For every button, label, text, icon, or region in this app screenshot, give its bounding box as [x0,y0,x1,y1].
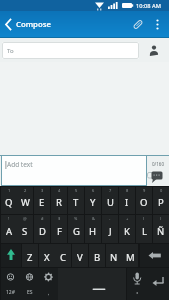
staticText: X [44,251,50,264]
staticText: 12# [6,289,15,296]
button[interactable]: D [34,215,50,243]
button[interactable] [127,268,148,300]
button[interactable]: S [17,215,33,243]
button[interactable]: I [119,187,135,214]
staticText: 5 [75,188,78,193]
staticText: & [92,216,95,221]
staticText: , [48,290,50,297]
button[interactable]: , [39,268,58,300]
button[interactable]: P [153,187,169,214]
button[interactable]: U [102,187,118,214]
staticText: ) [160,216,162,221]
button[interactable]: Add text [1,155,147,186]
button[interactable]: A [1,215,17,243]
staticText: E [39,196,45,209]
staticText: K [124,225,130,238]
staticText: @ [23,216,27,221]
button[interactable]: To [2,42,139,59]
button[interactable]: E [34,187,50,214]
staticText: 0 [160,188,163,193]
button[interactable]: T [68,187,84,214]
button[interactable]: C [55,244,71,267]
button[interactable] [148,268,169,300]
staticText: Compose [16,19,51,30]
staticText: Add text [7,160,33,169]
staticText: I [125,196,129,209]
staticText: 6 [92,188,95,193]
button[interactable]: V [72,244,88,267]
staticText: M [126,251,135,264]
button[interactable]: X [39,244,55,267]
staticText: # [41,216,44,221]
button[interactable]: Y [85,187,101,214]
button[interactable] [58,268,126,300]
button[interactable]: N [106,244,122,267]
staticText: P [158,196,164,209]
button[interactable]: L [136,215,152,243]
staticText: F [57,225,62,238]
staticText: 4 [58,188,61,193]
button[interactable]: Ñ [153,215,169,243]
button[interactable] [146,170,166,186]
staticText: 7 [109,188,112,193]
button[interactable]: O [136,187,152,214]
staticText: + [126,216,129,221]
button[interactable]: B [89,244,105,267]
button[interactable]: K [119,215,135,243]
staticText: Z [27,251,33,264]
button[interactable]: H [85,215,101,243]
staticText: $ [58,216,61,221]
staticText: To [7,47,14,55]
staticText: U [107,196,114,209]
button[interactable] [145,41,163,59]
staticText: A [6,225,13,238]
staticText: V [77,251,83,264]
staticText: J [109,225,112,238]
button[interactable] [1,244,21,267]
staticText: 0/160 [152,161,164,167]
button[interactable]: F [51,215,67,243]
staticText: Ñ [157,225,165,238]
button[interactable] [150,11,166,38]
staticText: O [140,196,148,209]
staticText: R [56,196,62,209]
staticText: H [89,225,97,238]
staticText: N [110,251,118,264]
staticText: W [21,196,30,209]
staticText: 1 [8,188,11,193]
button[interactable]: R [51,187,67,214]
staticText: C [60,251,67,264]
staticText: 3 [41,188,44,193]
button[interactable]: J [102,215,118,243]
staticText: D [39,225,46,238]
staticText: G [73,225,80,238]
staticText: 9 [143,188,146,193]
staticText: 2 [24,188,27,193]
staticText: Y [90,196,96,209]
staticText: ( [143,216,145,221]
staticText: S [22,225,28,238]
button[interactable]: M [122,244,138,267]
staticText: B [94,251,101,264]
button[interactable]: Q [1,187,17,214]
staticText: Q [5,196,13,209]
button[interactable] [128,11,148,38]
button[interactable]: 12# [1,268,20,300]
button[interactable]: G [68,215,84,243]
staticText: 10:08 AM [136,2,161,10]
button[interactable] [0,11,16,38]
button[interactable]: W [17,187,33,214]
staticText: L [142,225,147,238]
button[interactable] [140,244,169,267]
button[interactable]: Z [22,244,38,267]
staticText: ES [27,289,33,296]
staticText: T [73,196,79,209]
staticText: ! [8,216,10,221]
staticText: - [109,216,111,221]
button[interactable]: ES [20,268,39,300]
staticText: % [74,216,78,221]
staticText: 8 [126,188,129,193]
